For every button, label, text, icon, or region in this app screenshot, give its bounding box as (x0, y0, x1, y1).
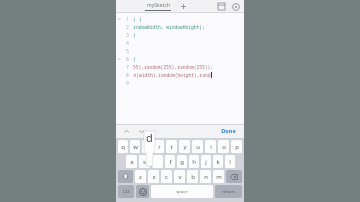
button[interactable]: v (174, 170, 185, 183)
button[interactable]: n (200, 170, 211, 183)
staticText: 55),random(255),random(255)); (133, 64, 213, 70)
staticText: x (152, 173, 156, 181)
staticText: return (222, 189, 235, 195)
staticText: n (204, 173, 208, 181)
button[interactable]: j (201, 155, 211, 168)
button[interactable]: l (225, 155, 235, 168)
staticText: d (146, 130, 153, 145)
staticText: j (205, 158, 207, 166)
button[interactable]: f (165, 155, 175, 168)
button[interactable]: Console (216, 1, 227, 12)
staticText: space (176, 189, 188, 195)
staticText: 123 (122, 189, 130, 195)
button[interactable]: g (177, 155, 187, 168)
staticText: o (222, 143, 226, 151)
button[interactable]: u (192, 140, 203, 153)
button[interactable]: o (218, 140, 229, 153)
staticText: } (133, 32, 136, 38)
staticText: h (192, 158, 196, 166)
staticText: { (133, 56, 136, 62)
staticText: t (170, 143, 173, 151)
button[interactable]: p (231, 140, 242, 153)
staticText: indowWidth, windowHeight); (133, 24, 205, 30)
staticText: z (139, 173, 142, 181)
staticText: mySketch (147, 2, 170, 9)
button[interactable] (142, 140, 152, 153)
button[interactable]: m (213, 170, 224, 183)
button[interactable]: t (166, 140, 177, 153)
button[interactable]: mySketch (143, 2, 173, 11)
staticText: f (169, 158, 172, 166)
staticText: 8 (126, 72, 129, 78)
button[interactable]: z (135, 170, 146, 183)
button[interactable]: a (126, 155, 137, 168)
staticText: 2 (126, 24, 129, 30)
staticText: ) { (133, 16, 142, 22)
staticText: m (216, 173, 222, 181)
staticText: w (133, 143, 138, 151)
staticText: 9 (126, 80, 129, 86)
button[interactable]: Shift (118, 170, 133, 183)
staticText: r (158, 143, 161, 151)
staticText: 5 (126, 48, 129, 54)
staticText: v (178, 173, 182, 181)
button[interactable]: c (161, 170, 172, 183)
button[interactable]: Run sketch (230, 1, 241, 12)
button[interactable]: 123 (118, 185, 134, 198)
staticText: Done (221, 127, 236, 135)
staticText: 4 (126, 40, 129, 46)
button[interactable]: space (151, 185, 213, 198)
button[interactable]: i (205, 140, 216, 153)
button[interactable]: r (154, 140, 164, 153)
staticText: 6 (126, 56, 129, 62)
button[interactable]: Next (136, 126, 147, 137)
button[interactable]: Emoji (136, 185, 149, 198)
staticText: s (143, 158, 146, 166)
staticText: g (180, 158, 184, 166)
staticText: c (165, 173, 168, 181)
button[interactable]: b (187, 170, 198, 183)
staticText: 7 (126, 64, 129, 70)
staticText: y (183, 143, 187, 151)
staticText: k (216, 158, 220, 166)
button[interactable]: New tab (179, 2, 188, 11)
button[interactable]: Previous (121, 126, 132, 137)
staticText: 1 (126, 16, 129, 22)
button[interactable] (152, 155, 163, 168)
button[interactable]: x (148, 170, 159, 183)
button[interactable]: s (139, 155, 150, 168)
staticText: l (229, 158, 231, 166)
button[interactable]: return (215, 185, 242, 198)
button[interactable]: Done (218, 125, 239, 137)
button[interactable]: w (130, 140, 140, 153)
staticText: a (130, 158, 134, 166)
button[interactable]: k (213, 155, 223, 168)
button[interactable]: y (179, 140, 190, 153)
staticText: b (191, 173, 195, 181)
staticText: q (121, 143, 125, 151)
staticText: 3 (126, 32, 129, 38)
button[interactable]: q (118, 140, 128, 153)
staticText: u (196, 143, 200, 151)
staticText: n(width),random(height),rand (133, 72, 211, 78)
button[interactable]: h (189, 155, 199, 168)
button[interactable]: Backspace (226, 170, 242, 183)
staticText: p (235, 143, 239, 151)
staticText: i (210, 143, 212, 151)
